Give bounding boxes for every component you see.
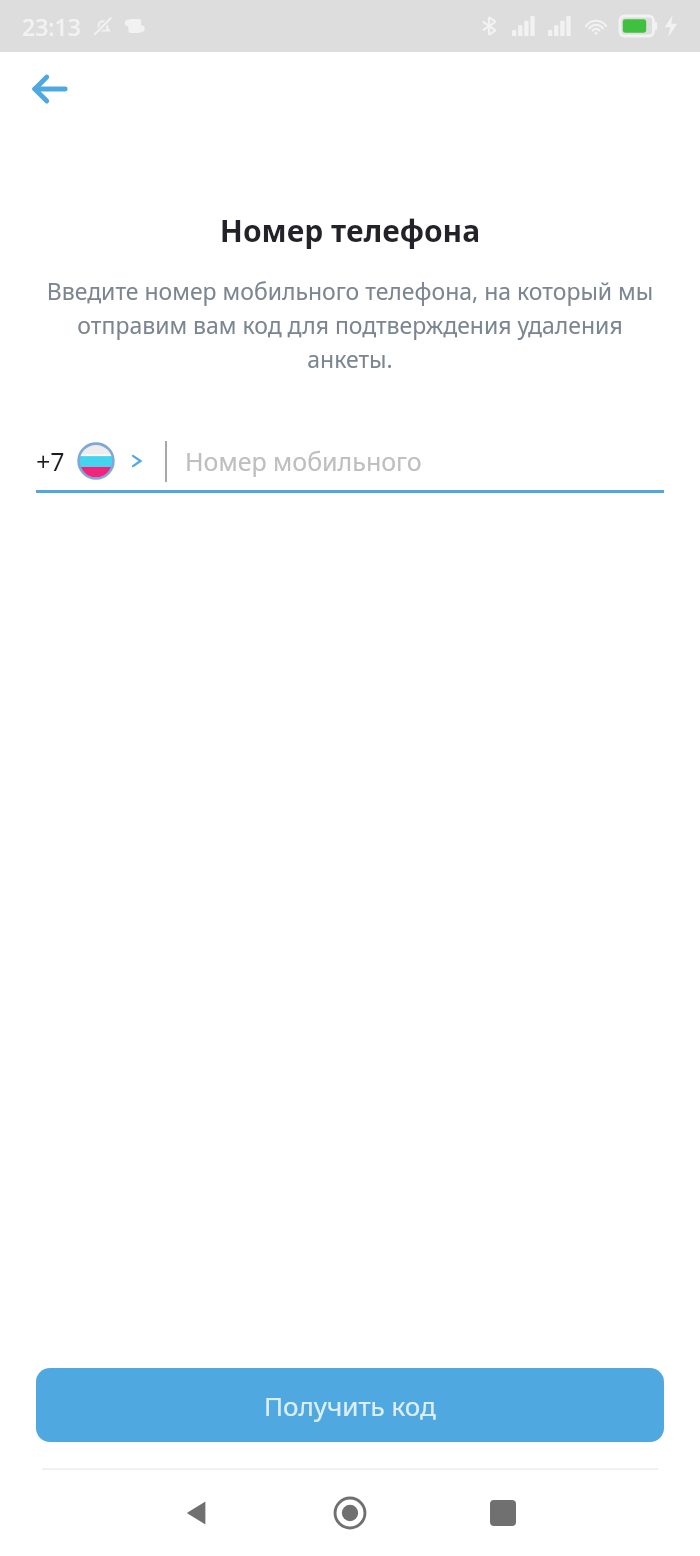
button[interactable]: Получить код bbox=[36, 1368, 664, 1442]
button[interactable]: +7 bbox=[36, 432, 145, 490]
staticText: +7 bbox=[36, 444, 65, 478]
staticText: Номер телефона bbox=[0, 210, 700, 251]
staticText: 23:13 bbox=[22, 11, 81, 42]
button[interactable]: Номер мобильного bbox=[185, 432, 664, 490]
staticText: Введите номер мобильного телефона, на ко… bbox=[32, 275, 668, 374]
staticText: Номер мобильного bbox=[185, 444, 422, 478]
button[interactable]: Recent apps bbox=[463, 1473, 543, 1553]
button[interactable]: Back bbox=[13, 52, 87, 126]
button[interactable]: Back bbox=[157, 1473, 237, 1553]
button[interactable]: Home bbox=[310, 1473, 390, 1553]
staticText: Получить код bbox=[264, 1388, 436, 1423]
